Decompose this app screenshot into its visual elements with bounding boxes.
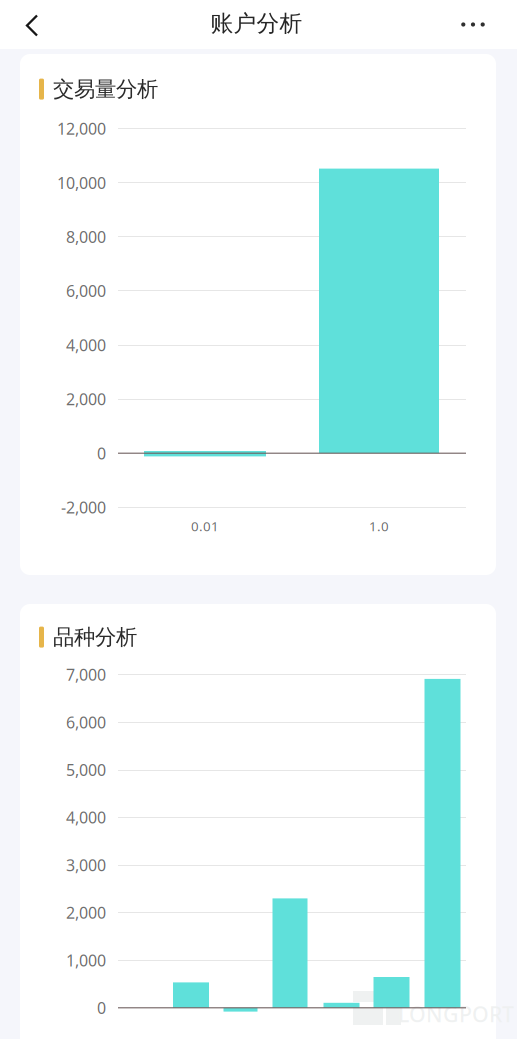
staticText: 3,000 [66, 854, 106, 876]
staticText: 6,000 [66, 712, 106, 733]
button[interactable]: Back [2, 6, 54, 43]
staticText: 0 [97, 443, 106, 464]
staticText: 10,000 [57, 172, 106, 193]
staticText: 账户分析 [210, 10, 302, 37]
staticText: 6,000 [66, 280, 106, 301]
staticText: 1.0 [369, 517, 389, 535]
staticText: -2,000 [61, 497, 106, 518]
staticText: LONGPORT [398, 1000, 514, 1028]
staticText: 12,000 [57, 118, 106, 139]
staticText: 7,000 [66, 664, 106, 685]
staticText: 1,000 [66, 950, 106, 971]
staticText: 0.01 [191, 517, 219, 535]
button[interactable]: More [447, 4, 499, 45]
staticText: 品种分析 [53, 624, 137, 650]
staticText: 0 [97, 997, 106, 1018]
staticText: 2,000 [66, 388, 106, 410]
staticText: 4,000 [66, 807, 106, 828]
staticText: 2,000 [66, 902, 106, 923]
staticText: 5,000 [66, 759, 106, 780]
staticText: 8,000 [66, 226, 106, 247]
staticText: 交易量分析 [53, 76, 158, 102]
staticText: 4,000 [66, 334, 106, 356]
